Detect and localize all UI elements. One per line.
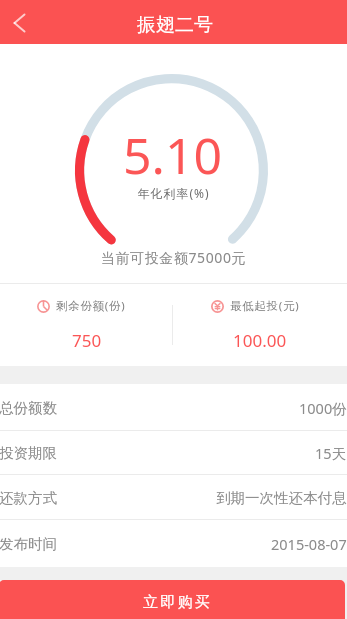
staticText: 1000份 — [299, 398, 347, 418]
button[interactable]: 还款方式 — [0, 475, 347, 520]
button[interactable]: 总份额数 — [0, 384, 347, 431]
button[interactable]: 最低起投(元) — [173, 284, 347, 366]
staticText: 振翅二号 — [137, 13, 213, 37]
staticText: 立即购买 — [143, 593, 212, 612]
staticText: 5.10 — [0, 121, 346, 189]
button[interactable]: Back — [0, 2, 40, 42]
staticText: 年化利率(%) — [0, 185, 347, 201]
staticText: 到期一次性还本付息 — [216, 489, 347, 507]
button[interactable]: 投资期限 — [0, 431, 347, 475]
staticText: 15天 — [315, 443, 347, 463]
button[interactable]: 剩余份额(份) — [0, 284, 173, 366]
staticText: 当前可投金额75000元 — [0, 248, 347, 267]
staticText: 投资期限 — [0, 444, 57, 462]
staticText: 750 — [72, 329, 102, 352]
staticText: 最低起投(元) — [230, 298, 300, 314]
staticText: 2015-08-07 — [271, 534, 347, 554]
button[interactable]: 立即购买 — [0, 580, 345, 619]
button[interactable]: 发布时间 — [0, 520, 347, 567]
staticText: 还款方式 — [0, 489, 57, 507]
staticText: 100.00 — [233, 329, 287, 352]
staticText: 剩余份额(份) — [56, 298, 126, 314]
staticText: 发布时间 — [0, 535, 57, 553]
staticText: 总份额数 — [0, 399, 57, 417]
